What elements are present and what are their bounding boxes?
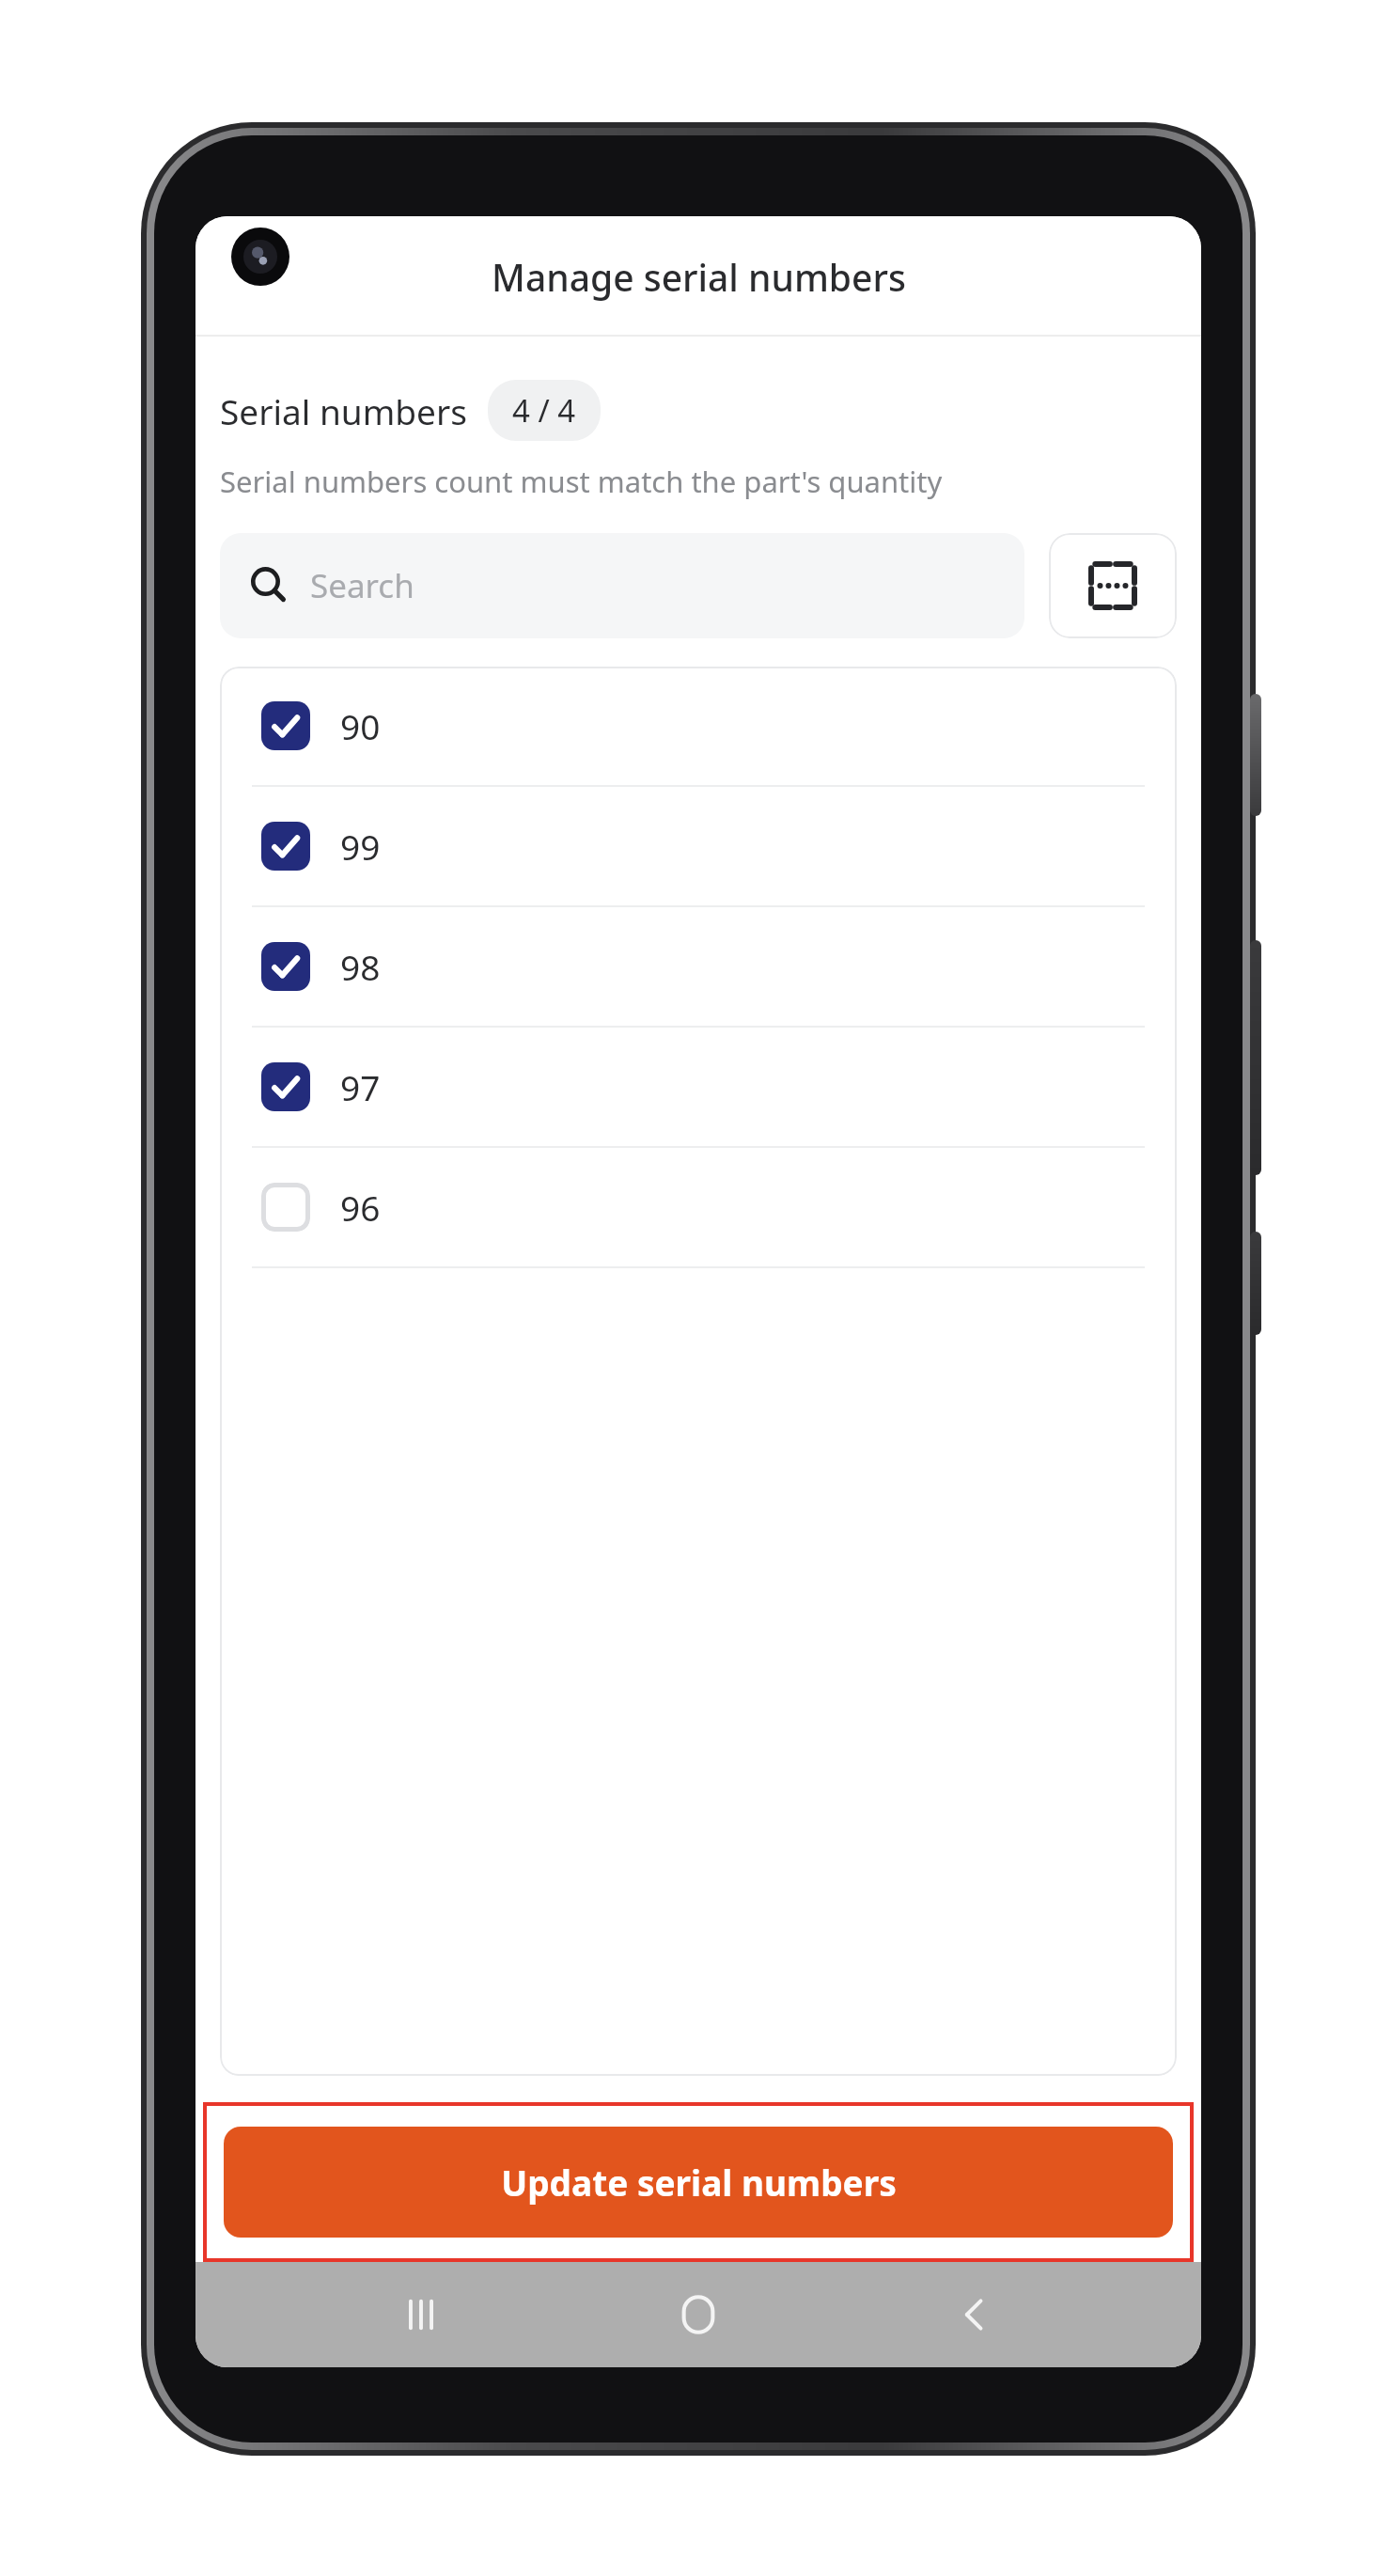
button[interactable]: 98 [220,907,1177,1026]
button[interactable]: Search [220,533,1024,638]
button[interactable]: 97 [220,1028,1177,1146]
button[interactable]: Home [647,2263,750,2366]
staticText: 99 [340,823,381,870]
button[interactable]: 96 [220,1148,1177,1266]
button[interactable]: Scan barcode [1049,533,1177,638]
button[interactable]: Update serial numbers [224,2127,1173,2238]
staticText: Manage serial numbers [492,252,906,302]
staticText: 98 [340,943,381,990]
staticText: 4 / 4 [512,389,576,432]
staticText: Serial numbers count must match the part… [220,462,943,501]
staticText: Serial numbers [220,387,467,434]
staticText: 97 [340,1063,381,1110]
button[interactable]: 90 [220,667,1177,785]
staticText: Update serial numbers [501,2159,897,2206]
staticText: Search [310,563,414,608]
button[interactable]: Recent apps [369,2263,473,2366]
staticText: 96 [340,1184,381,1231]
button[interactable]: 99 [220,787,1177,905]
staticText: 90 [340,702,381,749]
button[interactable]: Back [924,2263,1027,2366]
